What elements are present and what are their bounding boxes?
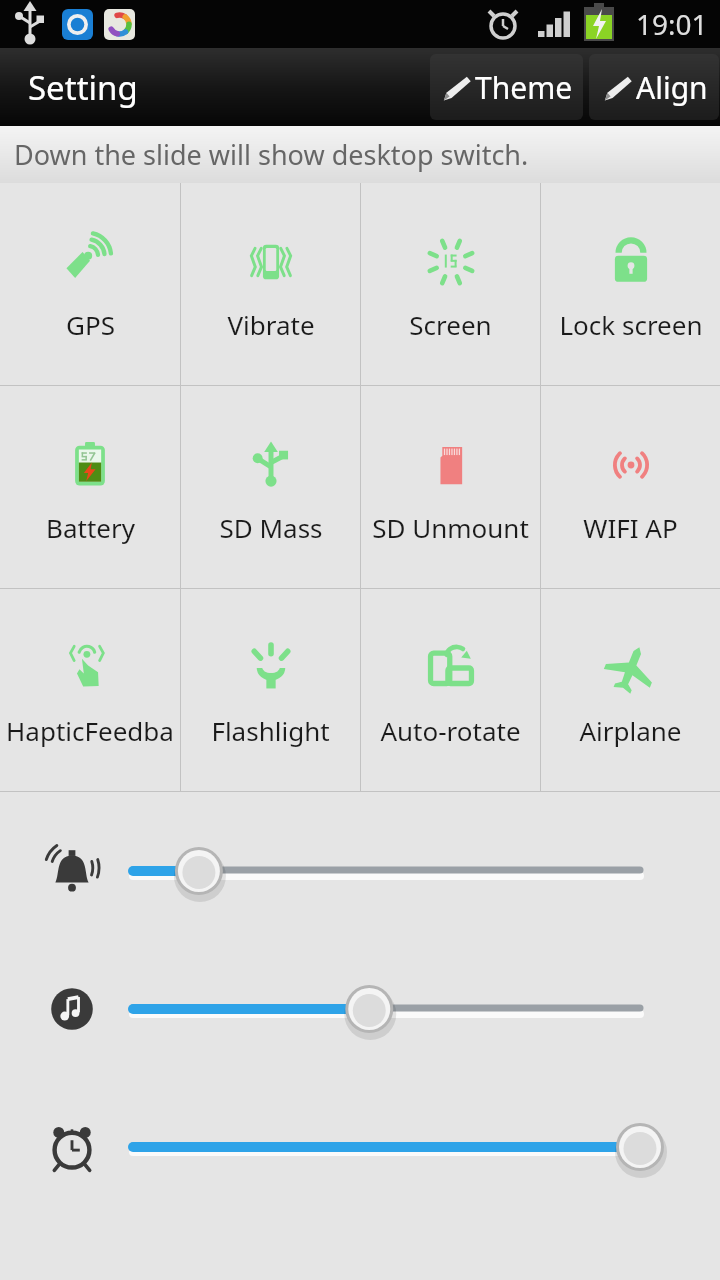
staticText: Screen timeout (363, 307, 538, 342)
button[interactable]: Alarm volume (0, 1112, 720, 1182)
staticText: WIFI AP (583, 510, 678, 545)
button[interactable]: HapticFeedback (0, 589, 180, 791)
staticText: Battery (46, 510, 135, 545)
staticText: 19:01 (636, 5, 708, 43)
staticText: Down the slide will show desktop switch. (14, 136, 529, 173)
button[interactable]: Lock screen (541, 183, 720, 385)
staticText: Airplane mode (543, 713, 718, 748)
staticText: HapticFeedback (2, 713, 178, 748)
button[interactable]: Airplane mode (541, 589, 720, 791)
staticText: Auto-rotate (380, 713, 521, 748)
staticText: Align (636, 67, 708, 108)
button[interactable]: Align (589, 54, 719, 120)
button[interactable]: WIFI AP (541, 386, 720, 588)
button[interactable]: Screen timeout (361, 183, 540, 385)
staticText: Lock screen (559, 307, 703, 342)
button[interactable]: Media volume (0, 974, 720, 1044)
button[interactable]: SD Unmount (361, 386, 540, 588)
staticText: Setting (28, 65, 138, 110)
button[interactable]: GPS (0, 183, 180, 385)
button[interactable]: Flashlight (181, 589, 360, 791)
staticText: GPS (66, 307, 115, 342)
staticText: Theme (475, 67, 573, 108)
staticText: Flashlight (211, 713, 330, 748)
button[interactable]: Battery (0, 386, 180, 588)
button[interactable]: Theme (430, 54, 583, 120)
staticText: SD Mass (219, 510, 323, 545)
staticText: SD Unmount (372, 510, 529, 545)
button[interactable]: SD Mass (181, 386, 360, 588)
button[interactable]: Vibrate (181, 183, 360, 385)
button[interactable]: Ringer volume (0, 836, 720, 906)
button[interactable]: Auto-rotate (361, 589, 540, 791)
staticText: Vibrate (227, 307, 315, 342)
